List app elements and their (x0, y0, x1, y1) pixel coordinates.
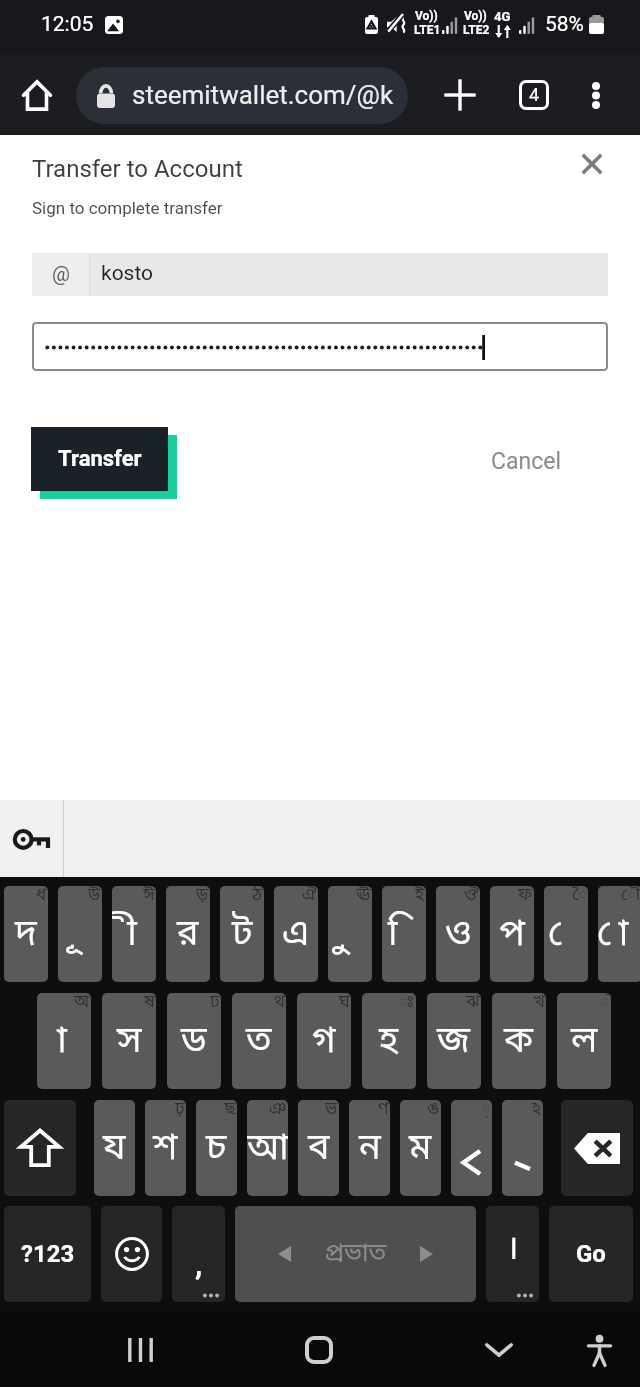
button[interactable] (101, 1206, 162, 1302)
button[interactable]: ঘ (297, 993, 351, 1089)
button[interactable]: Close (566, 138, 618, 190)
staticText: জ (437, 1019, 471, 1067)
button[interactable]: ৌ (598, 886, 640, 982)
button[interactable]: New tab (432, 67, 488, 123)
button[interactable]: ঽ (502, 1100, 543, 1196)
button[interactable]: ড় (166, 886, 210, 982)
button[interactable]: অ (37, 993, 91, 1089)
button[interactable]: ৈ (544, 886, 588, 982)
staticText: শ (153, 1126, 178, 1174)
button[interactable]: Go (549, 1206, 633, 1302)
staticText: kosto (101, 261, 154, 286)
button[interactable]: ণ (349, 1100, 390, 1196)
button[interactable]: Home (291, 1322, 347, 1378)
staticText: ঞ (269, 1100, 287, 1121)
staticText: ধ (36, 886, 47, 907)
button[interactable]: ় (451, 1100, 492, 1196)
staticText: ন (359, 1126, 381, 1174)
button[interactable]: ঔ (436, 886, 480, 982)
button[interactable]: ?123 (4, 1206, 91, 1302)
staticText: ঈ (143, 886, 155, 907)
staticText: য (103, 1126, 126, 1174)
staticText: ী (118, 912, 137, 960)
staticText: steemitwallet.com/@k (132, 80, 394, 110)
button[interactable]: ঞ (247, 1100, 288, 1196)
staticText: LTE1 (414, 23, 441, 37)
button[interactable]: Accessibility (571, 1322, 627, 1378)
button[interactable]: খ (492, 993, 546, 1089)
button[interactable]: ঢ় (145, 1100, 186, 1196)
staticText: গ (312, 1019, 336, 1067)
staticText: আ (247, 1126, 288, 1174)
button[interactable] (4, 1100, 76, 1196)
staticText: দ (15, 912, 37, 960)
staticText: ঘ (339, 993, 350, 1014)
staticText: ি (388, 912, 407, 960)
button[interactable]: ফ (490, 886, 534, 982)
button[interactable]: , (172, 1206, 225, 1302)
button[interactable]: উ (58, 886, 102, 982)
button[interactable]: ঝ (427, 993, 481, 1089)
button[interactable]: ঐ (274, 886, 318, 982)
button[interactable]: ঙ (400, 1100, 441, 1196)
staticText: ণ (378, 1100, 389, 1121)
staticText: Transfer (58, 446, 142, 472)
staticText: ভ (325, 1100, 338, 1121)
staticText: উ (88, 886, 101, 907)
staticText: Sign to complete transfer (32, 198, 223, 218)
button[interactable]: Cancel (477, 438, 575, 484)
button[interactable]: ঁ (557, 993, 611, 1089)
staticText: ঢ (210, 993, 220, 1014)
button[interactable]: । (486, 1206, 539, 1302)
staticText: া (48, 1019, 67, 1067)
button[interactable]: ছ (196, 1100, 237, 1196)
staticText: 4G (494, 9, 511, 24)
button[interactable] (561, 1100, 633, 1196)
staticText: অ (74, 993, 90, 1014)
button[interactable]: @ (32, 253, 608, 296)
button[interactable]: ষ (102, 993, 156, 1089)
button[interactable]: ঊ (328, 886, 372, 982)
staticText: চ (206, 1126, 227, 1174)
button[interactable]: ঈ (112, 886, 156, 982)
staticText: ় (482, 1100, 491, 1121)
button[interactable]: ঠ (220, 886, 264, 982)
staticText: 4 (529, 84, 540, 105)
staticText: ত (246, 1019, 272, 1067)
button[interactable]: Passwords (0, 800, 63, 877)
button[interactable]: ্য (94, 1100, 135, 1196)
button[interactable]: ই (382, 886, 426, 982)
staticText: ূ (68, 912, 78, 960)
staticText: ঊ (356, 886, 371, 907)
staticText: ড় (196, 886, 209, 907)
button[interactable]: ভ (298, 1100, 339, 1196)
button[interactable]: Hide keyboard (471, 1322, 527, 1378)
button[interactable]: প্রভাত (235, 1206, 476, 1302)
staticText: । (506, 1228, 519, 1273)
button[interactable]: ঃ (362, 993, 416, 1089)
staticText: ঁ (601, 993, 610, 1014)
staticText: ঙ (427, 1100, 440, 1121)
button[interactable]: থ (232, 993, 286, 1089)
button[interactable]: Home (9, 67, 65, 123)
button[interactable]: Recent apps (112, 1322, 168, 1378)
button[interactable]: ধ (4, 886, 48, 982)
button[interactable]: Tabs (506, 67, 562, 123)
button[interactable]: steemitwallet.com/@k (76, 67, 408, 124)
button[interactable]: ঢ (167, 993, 221, 1089)
staticText: ো (598, 912, 629, 960)
staticText: ছ (224, 1100, 236, 1121)
staticText: Go (576, 1240, 606, 1268)
staticText: 12:05 (41, 12, 94, 37)
staticText: ক (504, 1019, 534, 1067)
staticText: ল (571, 1019, 598, 1067)
button[interactable]: More options (568, 67, 624, 123)
staticText: ও (445, 912, 472, 960)
staticText: এ (282, 912, 310, 960)
button[interactable]: Transfer (31, 427, 168, 491)
staticText: , (195, 1247, 203, 1282)
staticText: প (499, 912, 525, 960)
button[interactable] (32, 322, 608, 371)
staticText: প্রভাত (325, 1238, 387, 1271)
staticText: ষ (144, 993, 155, 1014)
